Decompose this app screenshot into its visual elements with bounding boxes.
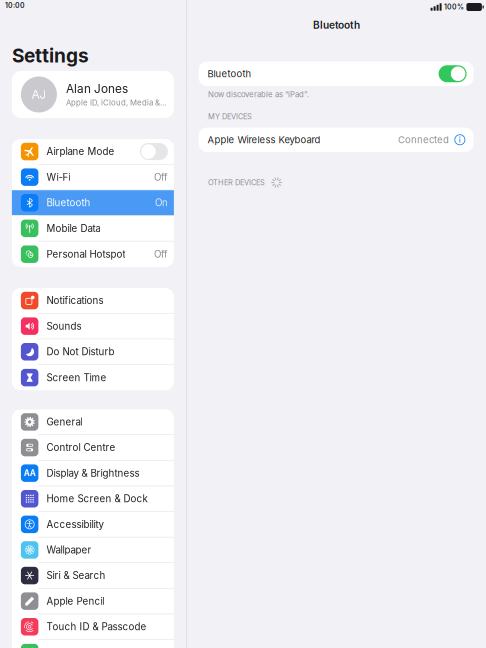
button[interactable]: Bluetooth: [199, 61, 474, 86]
staticText: Off: [154, 248, 168, 260]
button[interactable]: Apple Pencil: [12, 589, 174, 614]
staticText: Mobile Data: [46, 222, 100, 234]
button[interactable]: Battery: [12, 640, 174, 648]
staticText: Bluetooth: [46, 197, 90, 209]
staticText: Wallpaper: [46, 544, 91, 556]
staticText: Personal Hotspot: [46, 248, 125, 260]
staticText: Apple Wireless Keyboard: [208, 134, 321, 145]
button[interactable]: Control Centre: [12, 435, 174, 461]
staticText: MY DEVICES: [208, 112, 252, 121]
staticText: Siri & Search: [46, 570, 105, 581]
staticText: 100%: [444, 3, 464, 11]
staticText: Bluetooth: [313, 19, 360, 31]
button[interactable]: Do Not Disturb: [12, 339, 174, 365]
button[interactable]: Apple Wireless Keyboard: [199, 127, 474, 152]
staticText: Alan Jones: [66, 82, 128, 96]
staticText: Display & Brightness: [46, 467, 139, 479]
staticText: Apple Pencil: [46, 595, 104, 607]
button[interactable]: Wi-Fi: [12, 165, 174, 190]
staticText: Do Not Disturb: [46, 346, 114, 358]
button[interactable]: General: [12, 409, 174, 435]
staticText: Now discoverable as “iPad”.: [208, 90, 309, 99]
button[interactable]: Mobile Data: [12, 216, 174, 241]
staticText: OTHER DEVICES: [208, 178, 265, 187]
staticText: Touch ID & Passcode: [46, 621, 146, 633]
staticText: Accessibility: [46, 518, 103, 530]
button[interactable]: Touch ID & Passcode: [12, 614, 174, 640]
staticText: Sounds: [46, 320, 81, 332]
button[interactable]: Notifications: [12, 288, 174, 314]
button[interactable]: Siri & Search: [12, 563, 174, 589]
button[interactable]: Wallpaper: [12, 537, 174, 563]
button[interactable]: Bluetooth: [12, 190, 174, 216]
button[interactable]: AA: [12, 461, 174, 486]
staticText: Airplane Mode: [46, 146, 114, 157]
staticText: On: [155, 197, 168, 209]
button[interactable]: Airplane Mode: [12, 139, 174, 165]
button[interactable]: Accessibility: [12, 512, 174, 537]
staticText: General: [46, 416, 82, 428]
staticText: Bluetooth: [208, 68, 252, 79]
button[interactable]: Home Screen & Dock: [12, 486, 174, 512]
staticText: Connected: [398, 134, 449, 145]
button[interactable]: Personal Hotspot: [12, 241, 174, 267]
staticText: Home Screen & Dock: [46, 493, 147, 505]
staticText: Notifications: [46, 295, 103, 306]
staticText: 10:00: [5, 1, 25, 10]
staticText: Control Centre: [46, 442, 115, 453]
staticText: Settings: [12, 44, 89, 67]
staticText: Apple ID, iCloud, Media &…: [66, 98, 167, 107]
button[interactable]: Screen Time: [12, 365, 174, 390]
staticText: Wi-Fi: [46, 171, 70, 183]
button[interactable]: Sounds: [12, 314, 174, 339]
staticText: Off: [154, 171, 168, 183]
staticText: Screen Time: [46, 372, 106, 383]
staticText: AJ: [31, 87, 46, 102]
staticText: AA: [24, 468, 36, 478]
